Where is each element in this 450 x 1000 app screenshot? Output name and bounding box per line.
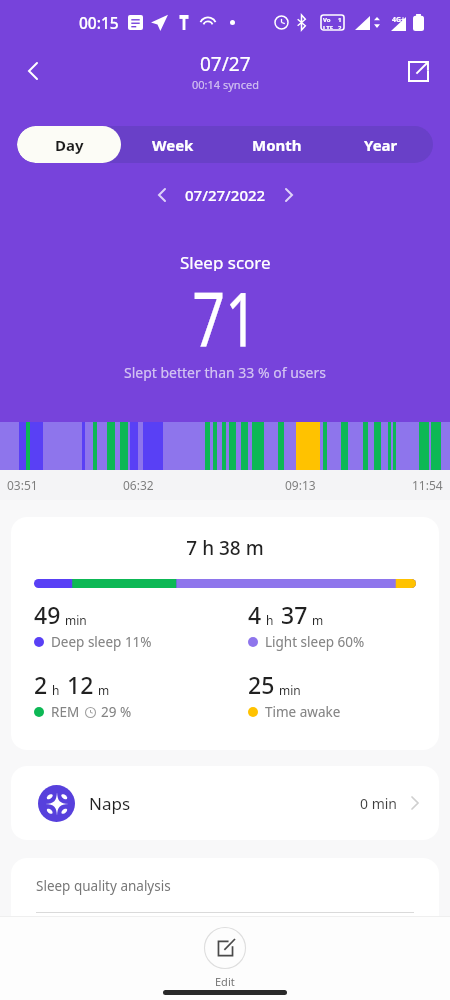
staticText: 00:15 — [79, 12, 119, 33]
staticText: m — [98, 682, 110, 698]
staticText: LTE — [323, 24, 334, 29]
staticText: Sleep quality analysis — [36, 877, 171, 895]
staticText: 12 — [67, 669, 94, 700]
button[interactable]: Month — [225, 126, 329, 163]
staticText: Light sleep 60% — [265, 633, 365, 651]
staticText: 2 — [338, 24, 342, 29]
staticText: Sleep score — [180, 251, 271, 271]
staticText: 2 — [34, 669, 48, 700]
staticText: m — [312, 612, 324, 628]
staticText: 00:14 synced — [192, 77, 259, 92]
staticText: min — [65, 612, 87, 628]
button[interactable]: Naps — [11, 766, 439, 840]
button[interactable]: Day — [17, 126, 121, 163]
staticText: Week — [152, 135, 194, 155]
button[interactable]: Previous day — [145, 178, 179, 212]
staticText: 0 min — [360, 794, 398, 813]
staticText: 29 % — [101, 703, 132, 721]
staticText: 4 — [248, 599, 262, 630]
staticText: 09:13 — [285, 477, 316, 493]
staticText: Slept better than 33 % of users — [124, 363, 326, 381]
staticText: 07/27/2022 — [185, 185, 266, 205]
staticText: Vo — [323, 16, 331, 24]
staticText: h — [266, 612, 274, 628]
staticText: 1 — [338, 16, 342, 24]
staticText: Deep sleep 11% — [51, 633, 152, 651]
button[interactable]: Year — [329, 126, 433, 163]
staticText: 7 h 38 m — [34, 535, 416, 561]
button[interactable]: Week — [121, 126, 225, 163]
staticText: 06:32 — [123, 477, 154, 493]
staticText: REM — [51, 703, 80, 721]
staticText: h — [52, 682, 60, 698]
staticText: 07/27 — [200, 51, 251, 77]
button[interactable]: Edit — [204, 927, 246, 989]
staticText: 4G+ — [392, 15, 406, 25]
staticText: Month — [252, 135, 302, 155]
staticText: Year — [364, 135, 398, 155]
staticText: Day — [55, 135, 84, 155]
staticText: Naps — [89, 792, 131, 815]
staticText: 03:51 — [7, 477, 38, 493]
button[interactable]: Next day — [272, 178, 306, 212]
staticText: 25 — [248, 669, 275, 700]
staticText: Edit — [215, 974, 235, 989]
button[interactable]: Back — [13, 51, 53, 91]
staticText: 11:54 — [412, 477, 443, 493]
staticText: 71 — [192, 265, 259, 347]
staticText: 49 — [34, 599, 61, 630]
button[interactable]: Share — [398, 51, 438, 91]
staticText: min — [279, 682, 301, 698]
staticText: Time awake — [265, 703, 341, 721]
staticText: 37 — [281, 599, 308, 630]
